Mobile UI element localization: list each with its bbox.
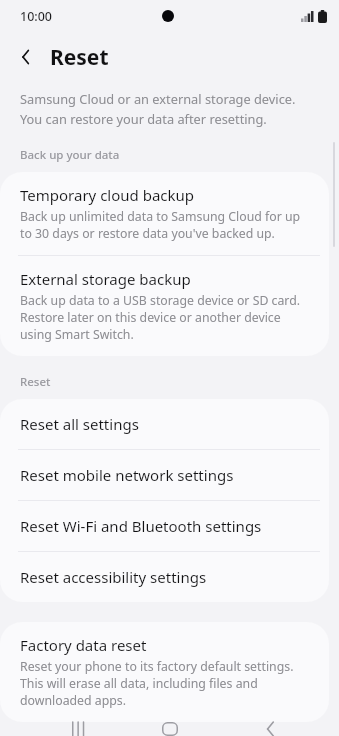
staticText: Reset mobile network settings	[20, 465, 234, 485]
button[interactable]: Back	[10, 40, 44, 74]
staticText: Back up unlimited data to Samsung Cloud …	[20, 208, 311, 242]
button[interactable]: Back	[251, 722, 293, 736]
staticText: Reset Wi-Fi and Bluetooth settings	[20, 516, 262, 536]
button[interactable]: Home	[149, 722, 191, 736]
staticText: Factory data reset	[20, 635, 147, 655]
staticText: External storage backup	[20, 269, 191, 289]
staticText: Back up your data	[20, 147, 339, 163]
staticText: Reset all settings	[20, 414, 139, 434]
staticText: Back up data to a USB storage device or …	[20, 292, 311, 343]
staticText: Reset accessibility settings	[20, 567, 207, 587]
staticText: 10:00	[20, 8, 53, 25]
button[interactable]: Reset Wi-Fi and Bluetooth settings	[0, 501, 329, 551]
button[interactable]: Factory data reset	[0, 622, 329, 722]
button[interactable]: Reset accessibility settings	[0, 552, 329, 602]
staticText: Reset	[20, 374, 339, 390]
button[interactable]: External storage backup	[0, 256, 329, 356]
staticText: Temporary cloud backup	[20, 185, 195, 205]
staticText: Reset	[50, 43, 109, 72]
staticText: Reset your phone to its factory default …	[20, 658, 311, 709]
button[interactable]: Temporary cloud backup	[0, 172, 329, 255]
staticText: Samsung Cloud or an external storage dev…	[20, 90, 315, 127]
button[interactable]: Recent apps	[58, 722, 100, 736]
button[interactable]: Reset all settings	[0, 399, 329, 449]
button[interactable]: Reset mobile network settings	[0, 450, 329, 500]
